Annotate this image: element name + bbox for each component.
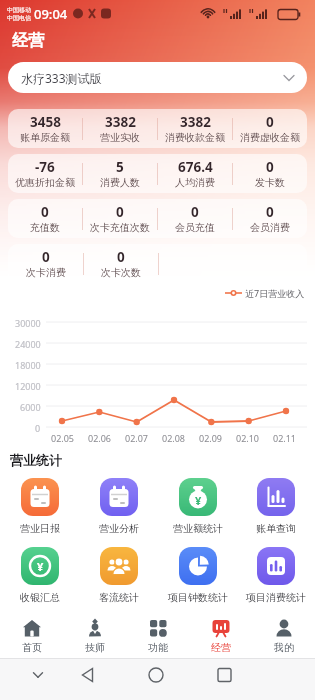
staticText: 功能 [148, 641, 168, 654]
staticText: 02.05 [51, 432, 75, 444]
staticText: 消费虚收金额 [240, 131, 300, 144]
staticText: 优惠折扣金额 [15, 176, 75, 189]
staticText: ¥ [37, 559, 44, 574]
staticText: 消费人数 [100, 176, 140, 189]
staticText: 营业实收 [100, 131, 140, 144]
staticText: 676.4 [178, 158, 213, 176]
staticText: 收银汇总 [20, 591, 60, 604]
staticText: 消费收款金额 [165, 131, 225, 144]
staticText: 经营 [12, 31, 44, 51]
staticText: 经营 [211, 641, 231, 654]
staticText: 中国电信 [7, 14, 31, 22]
staticText: 客流统计 [99, 591, 139, 604]
staticText: 6000 [20, 401, 41, 413]
staticText: 0 [41, 203, 49, 221]
staticText: 02.10 [236, 432, 260, 444]
staticText: 02.09 [199, 432, 223, 444]
staticText: 02.06 [88, 432, 112, 444]
staticText: 0 [42, 248, 50, 266]
staticText: 营业额统计 [173, 522, 223, 535]
staticText: 24000 [15, 338, 41, 350]
staticText: 项目钟数统计 [168, 591, 228, 604]
staticText: 02.11 [273, 432, 297, 444]
staticText: 次卡消费 [26, 266, 66, 279]
staticText: 会员充值 [175, 221, 215, 234]
staticText: 0 [35, 422, 41, 434]
staticText: 18000 [15, 359, 41, 371]
staticText: 营业分析 [99, 522, 139, 535]
staticText: 3458 [30, 113, 61, 131]
staticText: 账单查询 [256, 522, 296, 535]
staticText: 我的 [274, 641, 294, 654]
staticText: 0 [117, 248, 125, 266]
staticText: 09:04 [34, 5, 68, 23]
staticText: 0 [191, 203, 199, 221]
staticText: 中国移动 [7, 6, 31, 14]
staticText: 0 [266, 203, 274, 221]
staticText: 发卡数 [255, 176, 285, 189]
staticText: -76 [35, 158, 55, 176]
staticText: 0 [266, 158, 274, 176]
staticText: 首页 [22, 641, 42, 654]
staticText: 0 [116, 203, 124, 221]
staticText: 充值数 [30, 221, 60, 234]
staticText: 次卡充值次数 [90, 221, 150, 234]
staticText: 营业统计 [10, 452, 62, 468]
staticText: 会员消费 [250, 221, 290, 234]
staticText: 30000 [15, 317, 41, 329]
staticText: 账单原金额 [20, 131, 70, 144]
staticText: 人均消费 [175, 176, 215, 189]
staticText: 02.07 [125, 432, 149, 444]
staticText: 3382 [105, 113, 136, 131]
staticText: 12000 [15, 380, 41, 392]
staticText: 营业日报 [20, 522, 60, 535]
staticText: 3382 [180, 113, 211, 131]
staticText: ¥ [195, 493, 202, 508]
staticText: 0 [266, 113, 274, 131]
staticText: 5 [116, 158, 124, 176]
staticText: 次卡次数 [101, 266, 141, 279]
staticText: 近7日营业收入 [245, 287, 305, 299]
staticText: 技师 [85, 641, 105, 654]
staticText: 水疗333测试版 [21, 70, 102, 86]
staticText: 项目消费统计 [246, 591, 306, 604]
staticText: 02.08 [162, 432, 186, 444]
